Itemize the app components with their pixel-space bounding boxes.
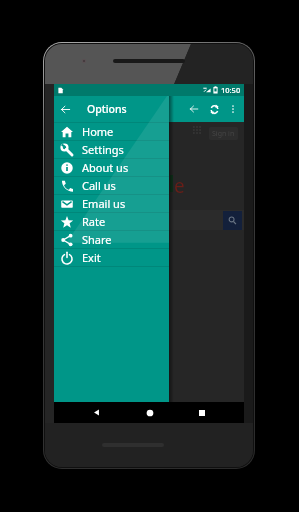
button[interactable]: Back xyxy=(86,402,107,423)
button[interactable]: More options xyxy=(224,100,242,118)
staticText: Home xyxy=(82,124,114,139)
staticText: Exit xyxy=(82,250,101,265)
button[interactable]: Exit xyxy=(54,249,169,266)
staticText: Rate xyxy=(82,214,106,229)
button[interactable]: Call us xyxy=(54,177,169,194)
button[interactable]: About us xyxy=(54,159,169,176)
button[interactable]: Navigate up xyxy=(55,99,75,119)
button[interactable]: Search xyxy=(223,211,242,230)
button[interactable]: Sign in xyxy=(209,127,238,140)
staticText: Call us xyxy=(82,178,116,193)
button[interactable]: Email us xyxy=(54,195,169,212)
staticText: e xyxy=(174,173,185,199)
staticText: Settings xyxy=(82,142,124,157)
button[interactable]: Recents xyxy=(191,402,212,423)
button[interactable]: Share xyxy=(54,231,169,248)
staticText: Sign in xyxy=(212,129,235,139)
button[interactable]: Settings xyxy=(54,141,169,158)
staticText: Options xyxy=(87,102,127,116)
staticText: Email us xyxy=(82,196,126,211)
button[interactable]: Refresh xyxy=(204,99,224,119)
button[interactable]: Rate xyxy=(54,213,169,230)
staticText: About us xyxy=(82,160,129,175)
staticText: Share xyxy=(82,232,112,247)
button[interactable]: Back xyxy=(184,99,204,119)
button[interactable]: Home xyxy=(139,402,160,423)
staticText: 10:50 xyxy=(221,85,241,95)
button[interactable]: Home xyxy=(54,123,169,140)
